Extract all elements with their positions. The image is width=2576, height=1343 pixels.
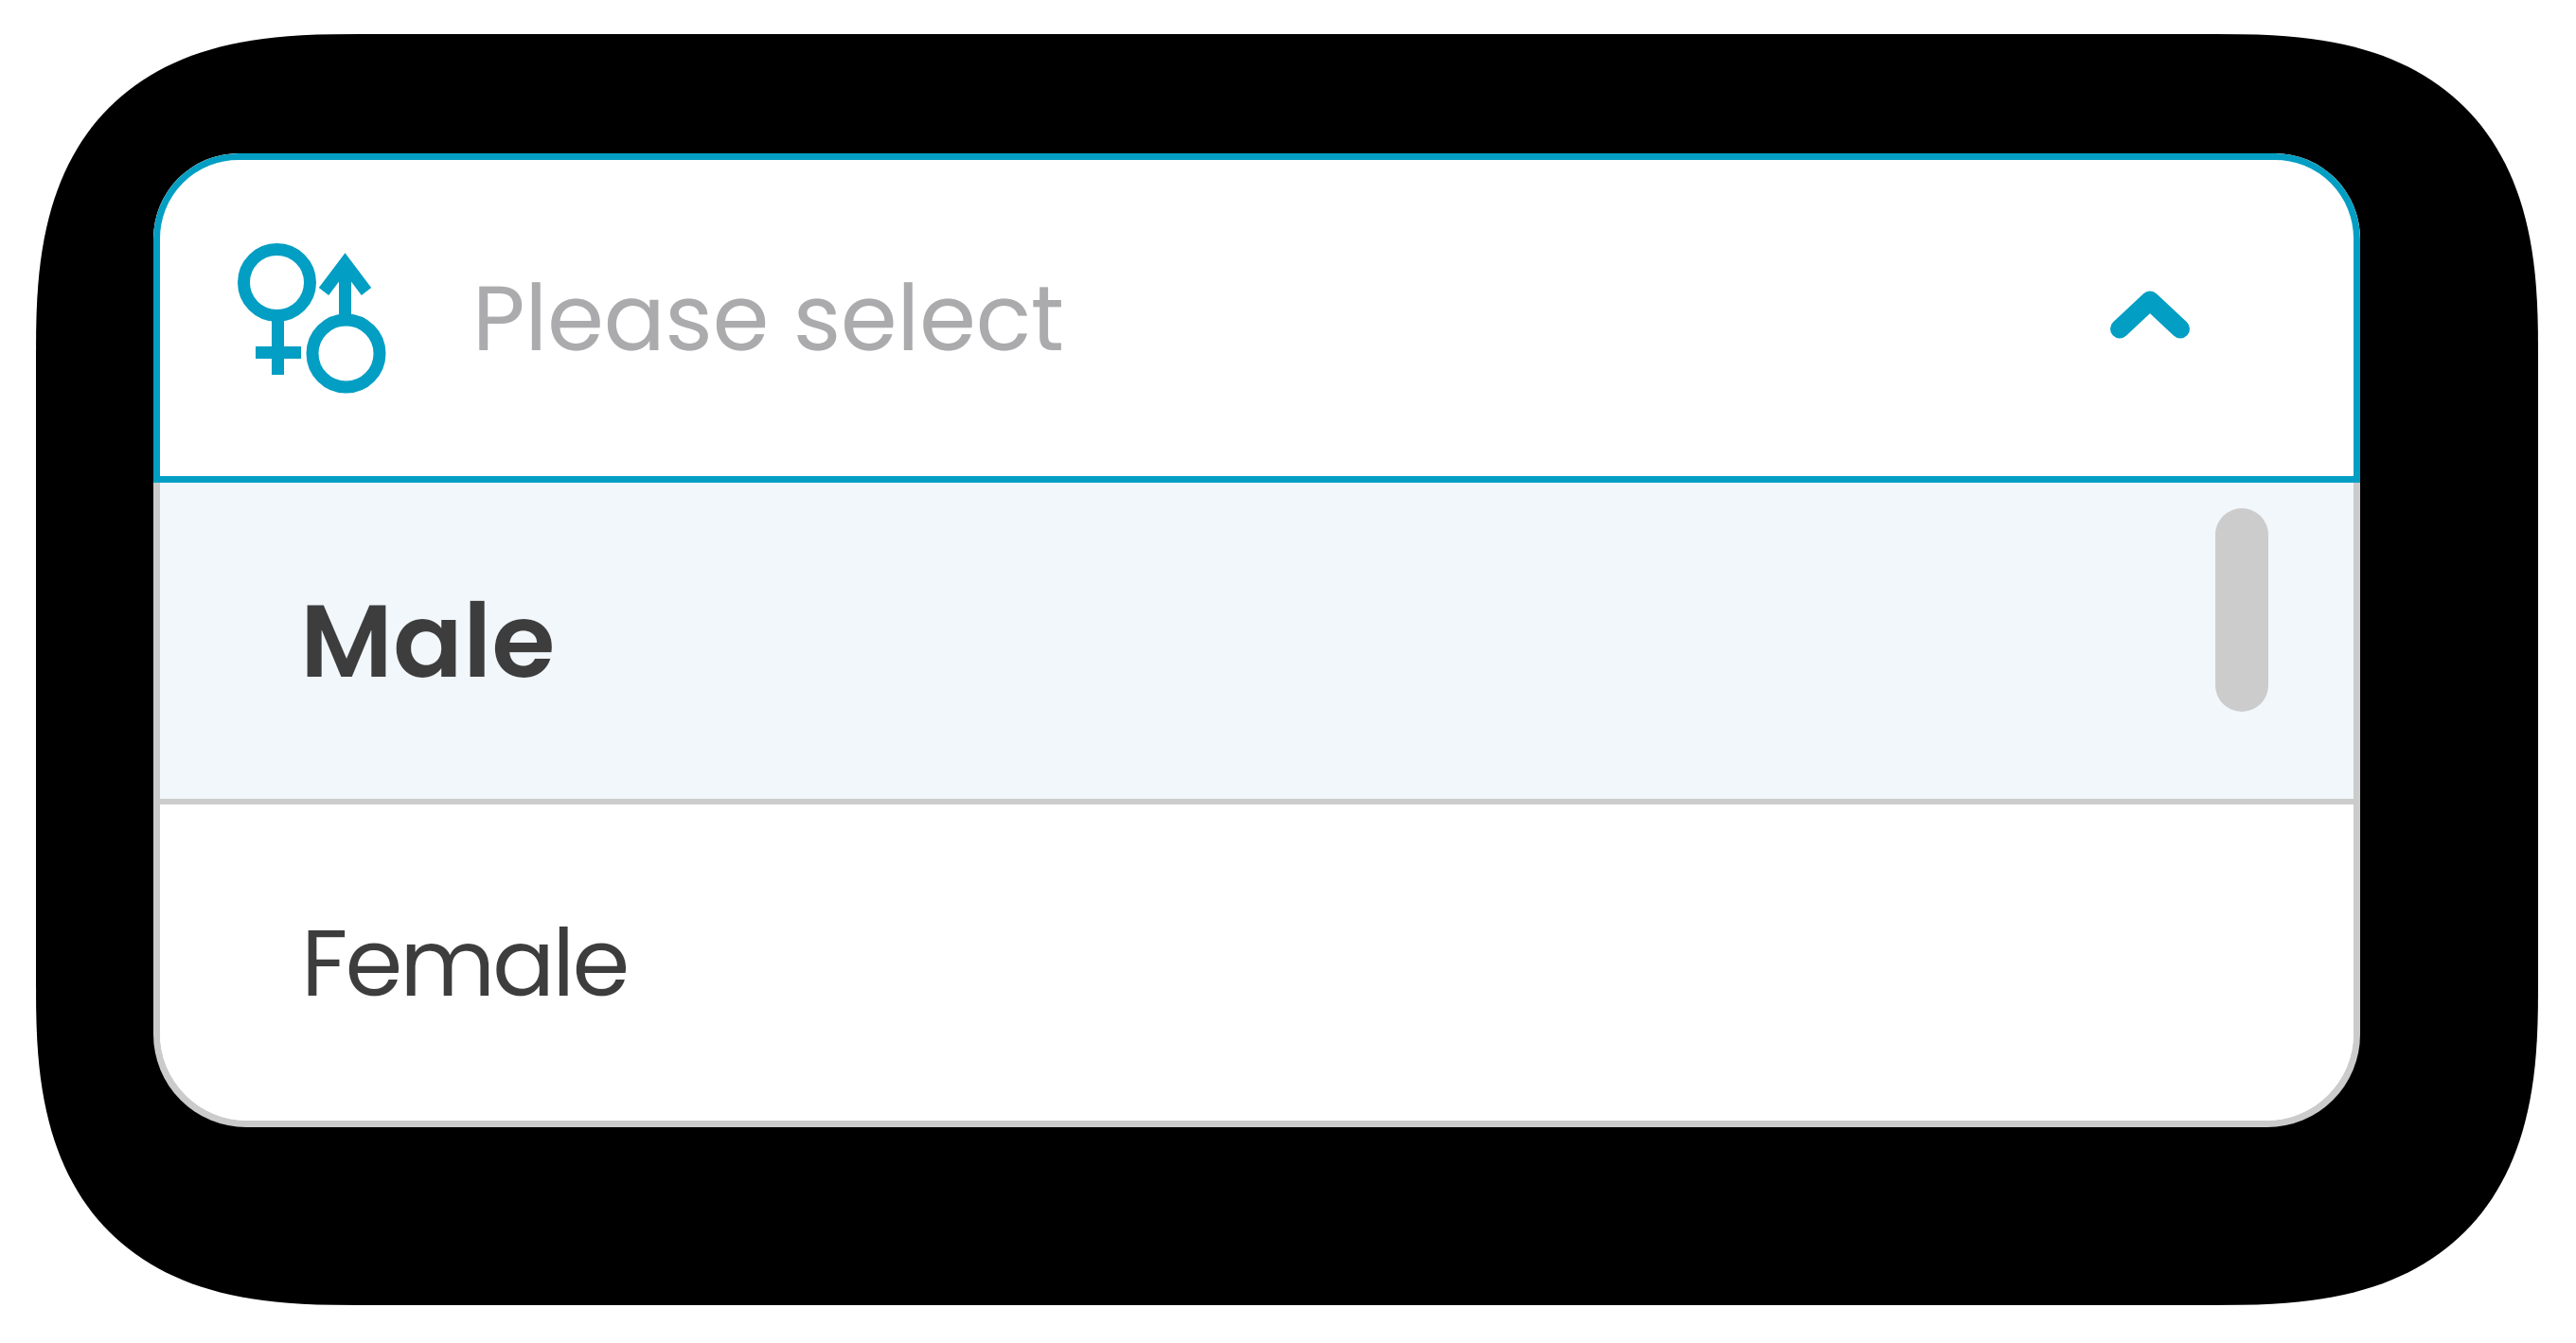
- button[interactable]: Female: [160, 804, 2354, 1121]
- staticText: Male: [300, 569, 556, 714]
- button[interactable]: Collapse list: [2065, 233, 2235, 403]
- staticText: Please select: [472, 255, 1064, 381]
- button[interactable]: Please select: [153, 153, 2360, 483]
- staticText: Female: [301, 898, 628, 1028]
- button[interactable]: Male: [160, 483, 2354, 799]
